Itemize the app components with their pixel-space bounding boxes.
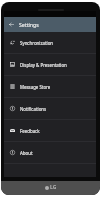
- staticText: Notifications: [20, 106, 47, 112]
- staticText: Settings: [19, 21, 39, 28]
- staticText: About: [20, 150, 33, 156]
- staticText: LG: [50, 184, 57, 191]
- button[interactable]: Notifications: [4, 98, 96, 119]
- button[interactable]: Synchronization: [4, 32, 96, 53]
- button[interactable]: Back: [4, 17, 19, 32]
- button[interactable]: About: [4, 142, 96, 163]
- staticText: Synchronization: [20, 40, 54, 46]
- button[interactable]: Message Store: [4, 76, 96, 97]
- staticText: Message Store: [20, 84, 51, 90]
- staticText: Feedback: [20, 128, 40, 134]
- button[interactable]: Feedback: [4, 120, 96, 141]
- button[interactable]: Display & Presentation: [4, 54, 96, 75]
- staticText: Display & Presentation: [20, 62, 67, 68]
